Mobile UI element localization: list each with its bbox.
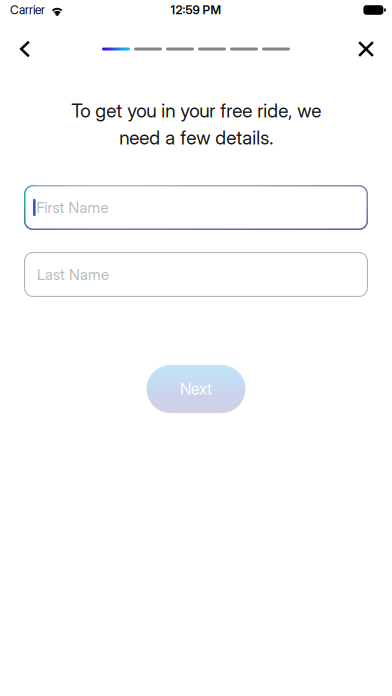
staticText: Carrier — [10, 3, 45, 17]
button[interactable]: Back — [3, 29, 47, 69]
staticText: First Name — [37, 198, 109, 216]
button[interactable]: Close — [344, 29, 388, 69]
staticText: 12:59 PM — [170, 3, 221, 17]
staticText: Next — [180, 379, 212, 399]
button[interactable]: Next — [146, 365, 245, 413]
staticText: To get you in your free ride, we need a … — [71, 99, 321, 149]
staticText: Last Name — [37, 265, 109, 283]
